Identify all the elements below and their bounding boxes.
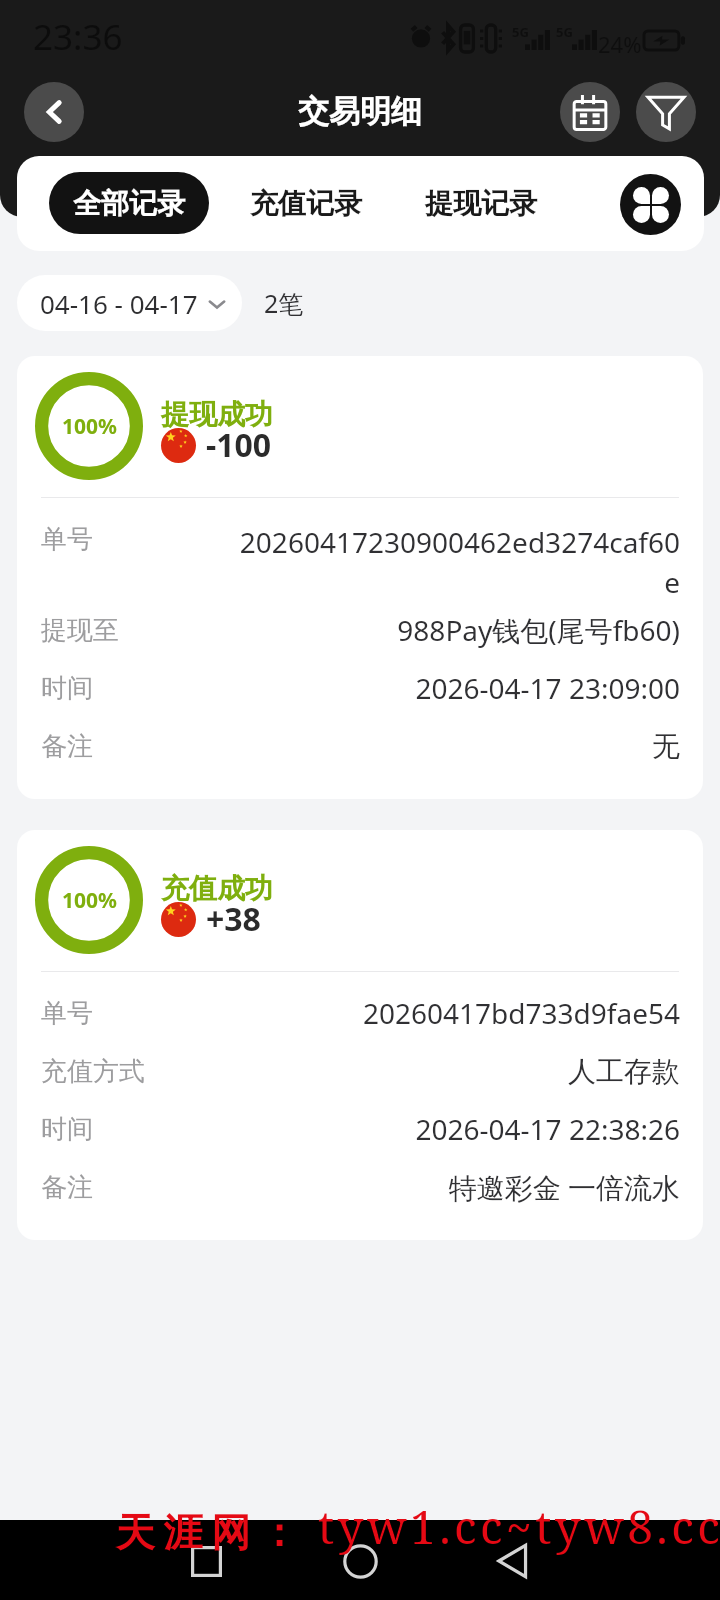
staticText: 100% xyxy=(62,886,117,915)
button[interactable]: Filter xyxy=(636,82,696,142)
staticText: 无 xyxy=(235,729,680,764)
staticText: 2笔 xyxy=(264,286,304,320)
staticText: 充值成功 xyxy=(161,871,273,906)
button[interactable]: 100% xyxy=(17,830,703,1240)
button[interactable]: 100% xyxy=(17,356,703,799)
staticText: 04-16 - 04-17 xyxy=(40,286,198,321)
button[interactable]: Back xyxy=(24,82,84,142)
staticText: 100% xyxy=(62,412,117,441)
staticText: 20260417230900462ed3274caf60e xyxy=(235,523,680,601)
staticText: 备注 xyxy=(41,1171,93,1204)
button[interactable]: Select date xyxy=(560,82,620,142)
staticText: 提现成功 xyxy=(161,397,273,432)
button[interactable]: Home xyxy=(332,1533,388,1589)
button[interactable]: More options xyxy=(620,174,681,235)
staticText: 提现至 xyxy=(41,614,119,647)
staticText: 20260417bd733d9fae54 xyxy=(235,994,680,1032)
staticText: 23:36 xyxy=(33,13,123,61)
staticText: 单号 xyxy=(41,997,93,1030)
staticText: 2026-04-17 22:38:26 xyxy=(235,1110,680,1148)
staticText: -100 xyxy=(206,423,272,467)
button[interactable]: 充值记录 xyxy=(232,172,380,234)
staticText: 单号 xyxy=(41,523,93,556)
staticText: 时间 xyxy=(41,1113,93,1146)
staticText: 天涯网： xyxy=(111,1508,303,1557)
staticText: 2026-04-17 23:09:00 xyxy=(235,669,680,707)
staticText: 交易明细 xyxy=(0,92,720,131)
staticText: 备注 xyxy=(41,730,93,763)
staticText: 5G xyxy=(556,23,573,41)
staticText: tyw1.cc~tyw8.cc xyxy=(318,1495,720,1558)
staticText: 988Pay钱包(尾号fb60) xyxy=(235,611,680,649)
staticText: 充值方式 xyxy=(41,1055,145,1088)
button[interactable]: 全部记录 xyxy=(49,172,209,234)
staticText: 时间 xyxy=(41,672,93,705)
staticText: 特邀彩金 一倍流水 xyxy=(235,1168,680,1206)
button[interactable]: 提现记录 xyxy=(407,172,555,234)
staticText: 5G xyxy=(512,23,529,41)
staticText: +38 xyxy=(206,897,261,941)
staticText: 全部记录 xyxy=(73,186,185,221)
button[interactable]: 04-16 - 04-17 xyxy=(17,275,242,331)
staticText: 24% xyxy=(598,29,642,59)
staticText: 提现记录 xyxy=(425,186,537,221)
button[interactable]: Back xyxy=(484,1533,540,1589)
staticText: 充值记录 xyxy=(250,186,362,221)
staticText: 人工存款 xyxy=(235,1054,680,1089)
button[interactable]: Recent apps xyxy=(178,1533,234,1589)
